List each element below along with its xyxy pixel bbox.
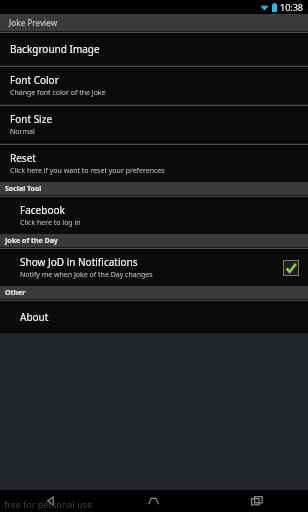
staticText: Click here if you want to reset your pre… <box>10 166 165 176</box>
button[interactable]: Reset <box>0 145 308 182</box>
staticText: About <box>20 310 49 324</box>
button[interactable]: Show JoD in Notifications <box>0 249 308 286</box>
button[interactable]: Back <box>0 490 102 512</box>
button[interactable]: Font Color <box>0 67 308 104</box>
button[interactable]: Recent apps <box>205 490 308 512</box>
staticText: Social Tool <box>5 184 42 194</box>
staticText: 10:38 <box>280 1 304 13</box>
staticText: Facebook <box>20 203 65 217</box>
button[interactable]: Font Size <box>0 106 308 143</box>
staticText: Font Size <box>10 112 53 126</box>
button[interactable]: Facebook <box>0 197 308 234</box>
button[interactable]: Home <box>102 490 205 512</box>
staticText: Font Color <box>10 73 59 87</box>
staticText: Joke Preview <box>9 17 58 28</box>
button[interactable]: About <box>0 301 308 333</box>
staticText: Notify me when Joke of the Day changes <box>20 270 153 280</box>
staticText: Reset <box>10 151 36 165</box>
staticText: free for personal use <box>4 498 93 510</box>
staticText: Show JoD in Notifications <box>20 255 138 269</box>
staticText: Normal <box>10 127 35 137</box>
staticText: Change font color of the joke <box>10 88 106 98</box>
button[interactable]: Background Image <box>0 33 308 65</box>
staticText: Click here to log in <box>20 218 81 228</box>
staticText: Background Image <box>10 42 100 56</box>
button[interactable]: Show JoD in Notifications toggle <box>282 259 300 277</box>
staticText: Joke of the Day <box>5 236 58 246</box>
staticText: Other <box>5 288 26 298</box>
